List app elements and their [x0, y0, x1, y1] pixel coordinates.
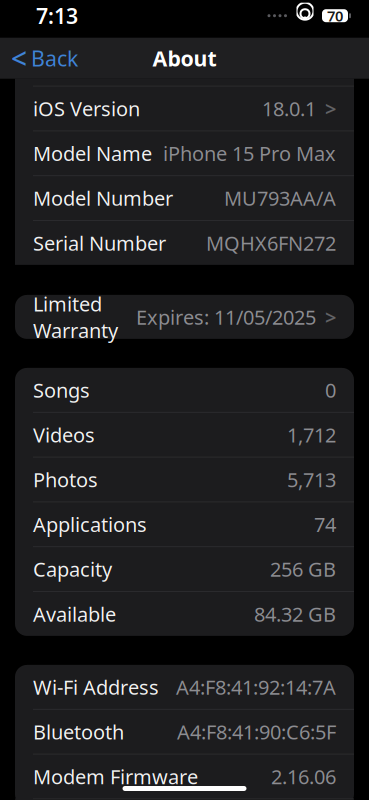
- staticText: Available: [33, 601, 116, 627]
- staticText: MU793AA/A: [224, 185, 336, 211]
- staticText: Model Number: [33, 185, 173, 211]
- button[interactable]: Model Number: [15, 176, 354, 220]
- button[interactable]: Model Name: [15, 131, 354, 175]
- staticText: Wi-Fi Address: [33, 674, 159, 700]
- button[interactable]: Applications: [15, 502, 354, 546]
- staticText: Model Name: [33, 140, 152, 167]
- button[interactable]: Photos: [15, 457, 354, 501]
- staticText: Limited Warranty: [33, 290, 118, 343]
- staticText: 18.0.1: [262, 95, 316, 122]
- button[interactable]: Wi-Fi Address: [15, 665, 354, 709]
- staticText: Back: [31, 44, 78, 72]
- staticText: About: [152, 44, 216, 72]
- staticText: iOS Version: [33, 95, 140, 122]
- staticText: >: [325, 304, 336, 330]
- staticText: Serial Number: [33, 230, 166, 256]
- button[interactable]: Modem Firmware: [15, 754, 354, 798]
- button[interactable]: Bluetooth: [15, 710, 354, 754]
- staticText: 2.16.06: [271, 763, 336, 790]
- button[interactable]: Videos: [15, 413, 354, 457]
- staticText: A4:F8:41:90:C6:5F: [177, 718, 336, 745]
- staticText: Capacity: [33, 556, 112, 582]
- staticText: iPhone 15 Pro Max: [163, 140, 336, 167]
- staticText: <: [11, 40, 27, 77]
- staticText: Bluetooth: [33, 718, 124, 745]
- staticText: 1,712: [287, 421, 336, 448]
- button[interactable]: Capacity: [15, 547, 354, 591]
- staticText: Modem Firmware: [33, 763, 198, 790]
- staticText: 0: [325, 377, 336, 403]
- button[interactable]: Limited Warranty: [15, 295, 354, 339]
- staticText: MQHX6FN272: [206, 230, 336, 256]
- staticText: >: [325, 95, 336, 122]
- staticText: 84.32 GB: [254, 601, 336, 627]
- staticText: Photos: [33, 466, 98, 493]
- staticText: Videos: [33, 421, 95, 448]
- button[interactable]: <: [0, 34, 78, 83]
- staticText: 5,713: [287, 466, 336, 493]
- button[interactable]: Serial Number: [15, 221, 354, 265]
- staticText: 74: [314, 511, 336, 538]
- button[interactable]: Available: [15, 592, 354, 636]
- staticText: Applications: [33, 511, 147, 538]
- staticText: 7:13: [36, 1, 78, 30]
- staticText: Songs: [33, 377, 90, 403]
- staticText: 256 GB: [270, 556, 336, 582]
- staticText: A4:F8:41:92:14:7A: [176, 674, 336, 700]
- button[interactable]: Songs: [15, 368, 354, 412]
- button[interactable]: iOS Version: [15, 86, 354, 130]
- staticText: Expires: 11/05/2025: [136, 304, 316, 330]
- staticText: 70: [327, 6, 343, 25]
